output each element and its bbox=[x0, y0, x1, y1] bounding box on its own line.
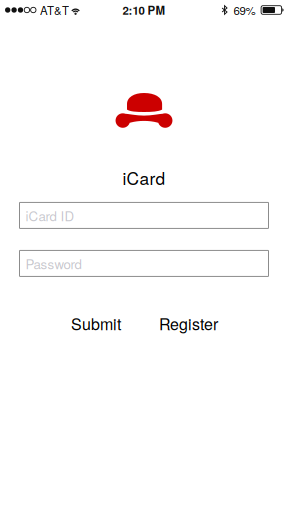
staticText: iCard ID bbox=[25, 206, 74, 225]
staticText: iCard bbox=[122, 165, 165, 190]
staticText: 2:10 PM bbox=[122, 2, 165, 18]
button[interactable]: Register bbox=[157, 313, 219, 333]
staticText: Submit bbox=[71, 312, 121, 335]
staticText: Password bbox=[25, 254, 81, 273]
button[interactable]: Submit bbox=[68, 313, 123, 333]
staticText: AT&T bbox=[40, 2, 69, 18]
button[interactable]: iCard ID bbox=[19, 202, 268, 228]
button[interactable]: Password bbox=[19, 250, 268, 276]
staticText: 69% bbox=[234, 2, 256, 18]
staticText: Register bbox=[159, 312, 218, 335]
